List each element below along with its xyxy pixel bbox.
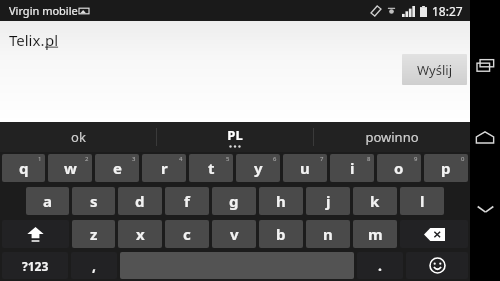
button[interactable]: q <box>2 154 45 182</box>
button[interactable]: Backspace <box>400 220 468 248</box>
button[interactable]: t <box>189 154 233 182</box>
staticText: r <box>161 158 168 178</box>
button[interactable]: a <box>26 187 69 215</box>
staticText: Wyślij <box>417 61 453 79</box>
staticText: y <box>254 158 263 178</box>
staticText: j <box>326 191 331 211</box>
staticText: , <box>92 256 96 275</box>
staticText: pl <box>45 30 59 50</box>
button[interactable]: . <box>357 252 403 279</box>
button[interactable]: r <box>142 154 186 182</box>
button[interactable]: Hide keyboard <box>470 194 500 224</box>
button[interactable]: b <box>259 220 303 248</box>
button[interactable]: o <box>377 154 421 182</box>
button[interactable]: n <box>306 220 350 248</box>
button[interactable]: z <box>72 220 115 248</box>
button[interactable]: v <box>212 220 256 248</box>
button[interactable]: y <box>236 154 280 182</box>
staticText: powinno <box>365 128 419 146</box>
button[interactable]: s <box>72 187 115 215</box>
button[interactable]: Home <box>470 122 500 152</box>
staticText: d <box>135 191 145 211</box>
staticText: i <box>350 158 355 178</box>
button[interactable]: j <box>306 187 350 215</box>
staticText: w <box>64 158 77 178</box>
button[interactable]: ok <box>0 122 156 152</box>
staticText: 9 <box>414 155 418 163</box>
staticText: h <box>276 191 286 211</box>
staticText: e <box>113 158 122 178</box>
button[interactable]: ?123 <box>2 252 68 279</box>
staticText: 2 <box>85 155 89 163</box>
button[interactable]: Wyślij <box>402 54 467 85</box>
button[interactable]: c <box>165 220 209 248</box>
staticText: b <box>276 224 286 244</box>
button[interactable]: Emoji <box>406 252 468 279</box>
staticText: 8 <box>367 155 371 163</box>
button[interactable]: e <box>95 154 139 182</box>
button[interactable]: p <box>424 154 468 182</box>
button[interactable]: Shift <box>2 220 69 248</box>
button[interactable]: f <box>165 187 209 215</box>
staticText: . <box>378 256 382 275</box>
button[interactable]: PL <box>157 122 313 152</box>
button[interactable]: i <box>330 154 374 182</box>
staticText: s <box>90 191 98 211</box>
staticText: 5 <box>226 155 230 163</box>
staticText: n <box>323 224 333 244</box>
staticText: f <box>184 191 190 211</box>
button[interactable]: , <box>71 252 117 279</box>
button[interactable]: h <box>259 187 303 215</box>
staticText: u <box>300 158 310 178</box>
staticText: l <box>420 191 425 211</box>
staticText: 7 <box>320 155 324 163</box>
staticText: ok <box>71 128 86 146</box>
staticText: Telix. <box>9 30 45 50</box>
button[interactable]: d <box>118 187 162 215</box>
staticText: g <box>229 191 239 211</box>
button[interactable]: m <box>353 220 397 248</box>
staticText: 6 <box>273 155 277 163</box>
staticText: 18:27 <box>432 3 463 19</box>
button[interactable]: powinno <box>314 122 470 152</box>
staticText: PL <box>227 126 243 144</box>
staticText: k <box>370 191 380 211</box>
staticText: 3 <box>132 155 136 163</box>
staticText: o <box>394 158 404 178</box>
staticText: z <box>90 224 98 244</box>
staticText: ?123 <box>22 258 49 274</box>
staticText: 1 <box>38 155 42 163</box>
button[interactable]: k <box>353 187 397 215</box>
button[interactable]: Recents <box>470 50 500 80</box>
staticText: p <box>441 158 451 178</box>
staticText: x <box>136 224 145 244</box>
staticText: t <box>208 158 215 178</box>
button[interactable]: x <box>118 220 162 248</box>
button[interactable]: w <box>48 154 92 182</box>
button[interactable]: u <box>283 154 327 182</box>
staticText: 4 <box>179 155 183 163</box>
button[interactable]: g <box>212 187 256 215</box>
staticText: Virgin mobile <box>9 3 78 18</box>
staticText: v <box>230 224 239 244</box>
staticText: q <box>19 158 29 178</box>
staticText: m <box>368 224 383 244</box>
staticText: a <box>43 191 52 211</box>
staticText: c <box>183 224 191 244</box>
staticText: 0 <box>461 155 465 163</box>
button[interactable]: l <box>400 187 444 215</box>
